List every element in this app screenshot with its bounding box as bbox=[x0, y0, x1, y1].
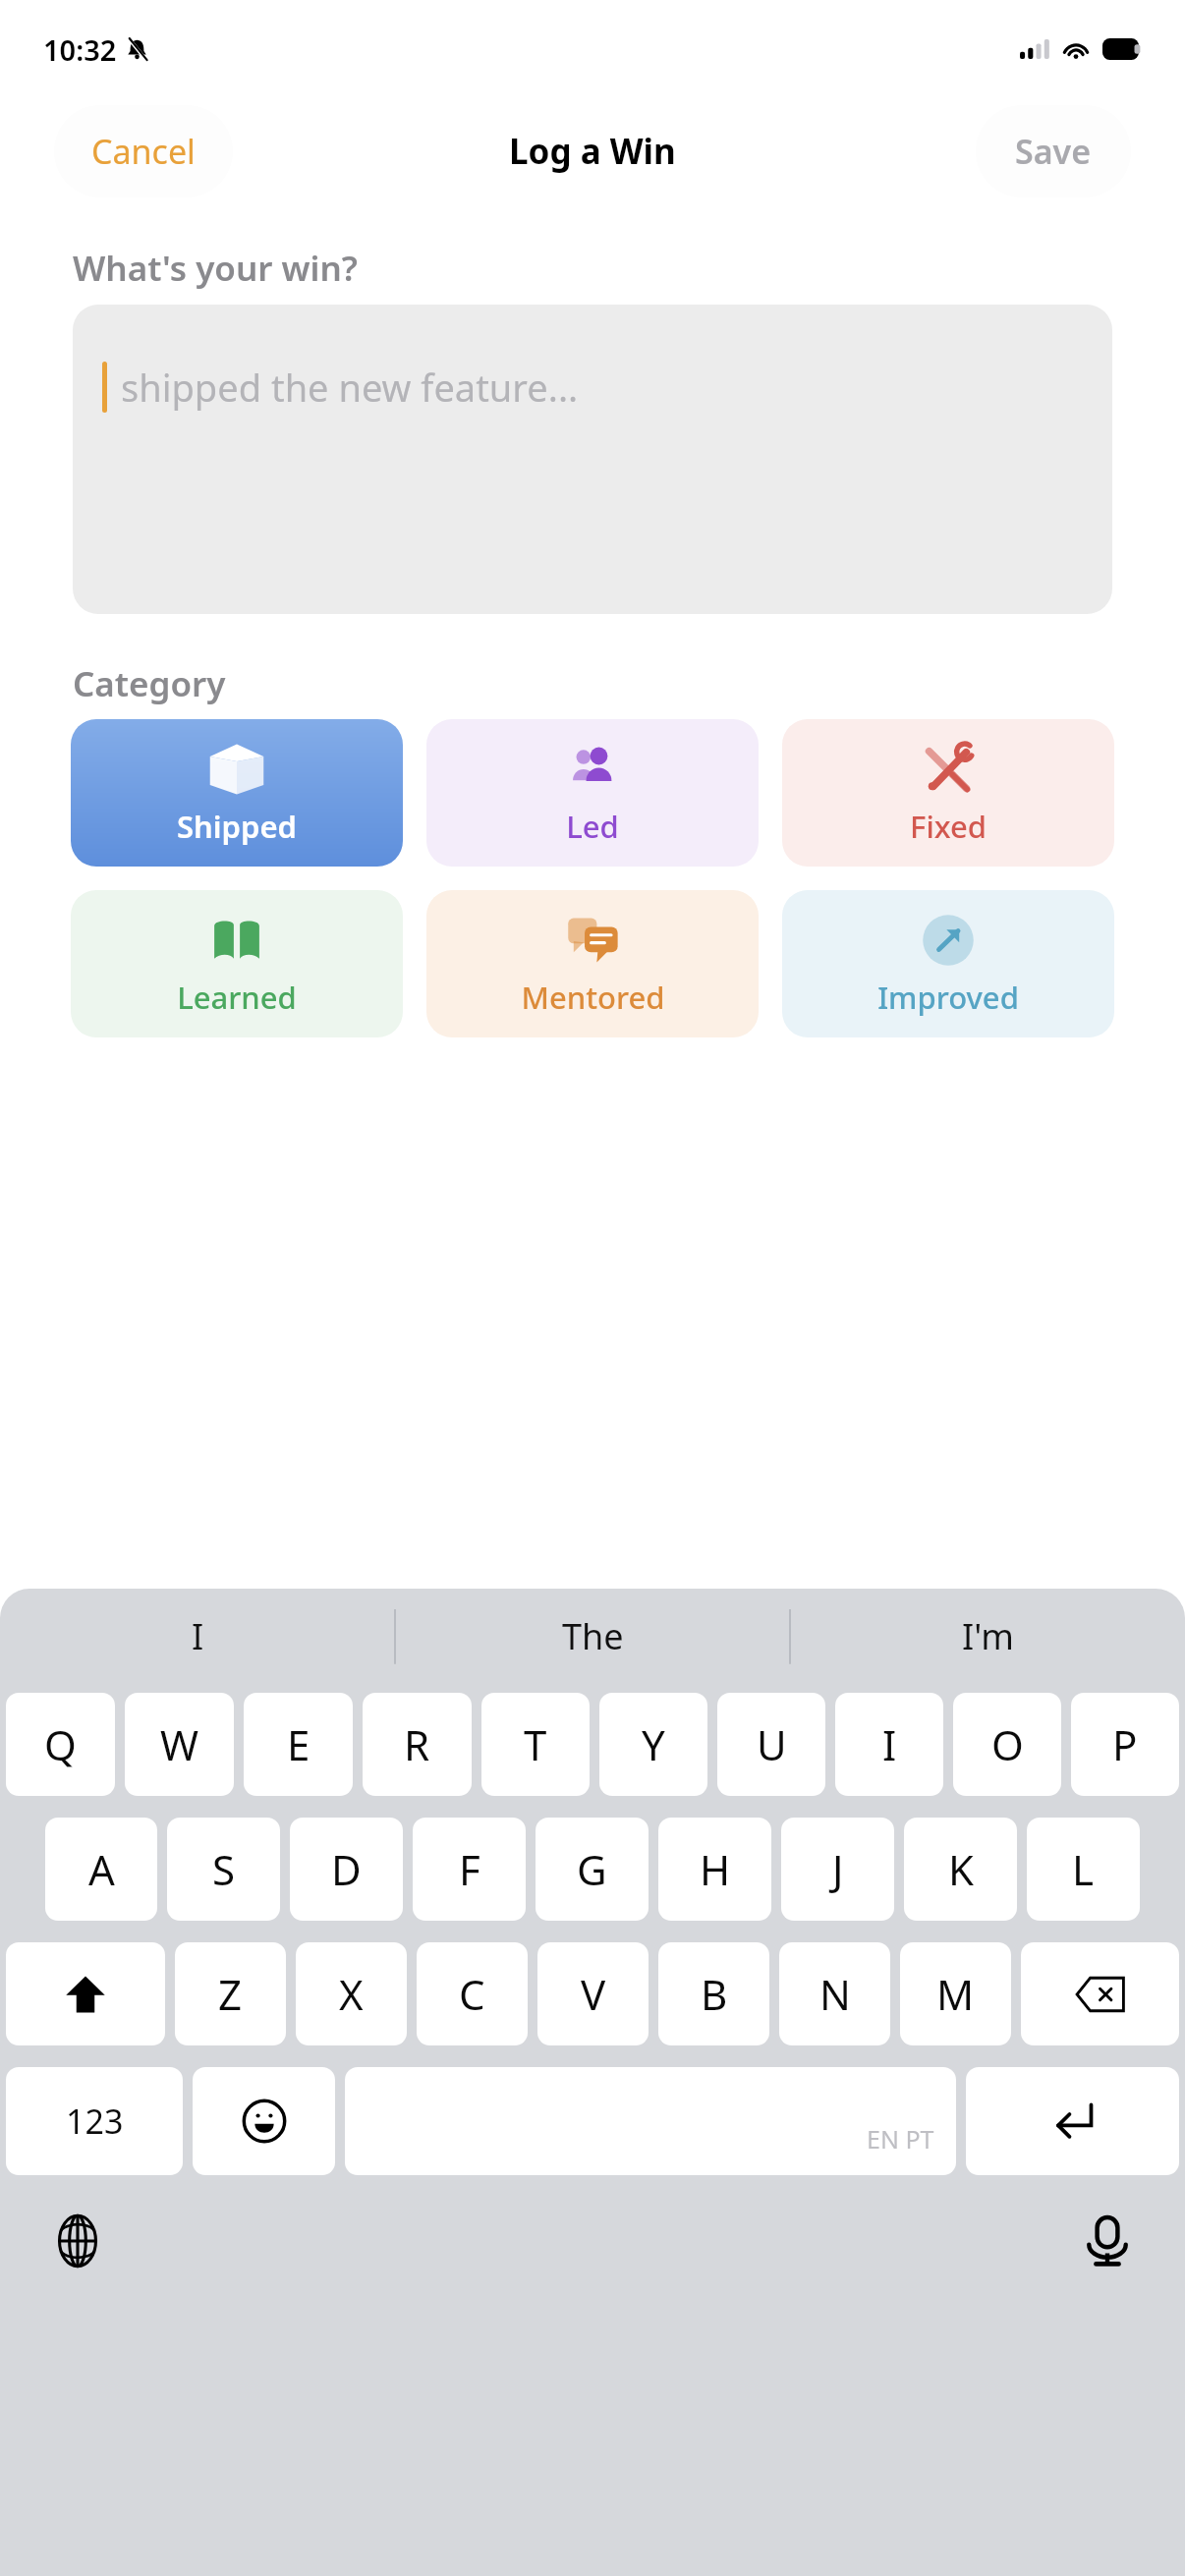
button[interactable]: EN PT bbox=[345, 2067, 956, 2175]
staticText: L bbox=[1072, 1841, 1095, 1897]
staticText: What's your win? bbox=[73, 245, 358, 292]
button[interactable]: R bbox=[363, 1693, 472, 1796]
staticText: I bbox=[192, 1612, 204, 1660]
button[interactable]: Z bbox=[175, 1942, 286, 2045]
button[interactable]: I bbox=[0, 1589, 395, 1683]
staticText: Y bbox=[642, 1716, 665, 1772]
button[interactable]: A bbox=[45, 1818, 157, 1921]
button[interactable]: F bbox=[413, 1818, 526, 1921]
staticText: EN PT bbox=[867, 2122, 934, 2156]
staticText: H bbox=[700, 1841, 731, 1897]
button[interactable]: I bbox=[835, 1693, 943, 1796]
button[interactable]: G bbox=[536, 1818, 649, 1921]
staticText: I bbox=[882, 1716, 897, 1772]
staticText: I'm bbox=[962, 1612, 1014, 1660]
staticText: E bbox=[287, 1716, 310, 1772]
button[interactable]: U bbox=[717, 1693, 825, 1796]
button[interactable]: Backspace bbox=[1021, 1942, 1179, 2045]
staticText: V bbox=[581, 1966, 606, 2022]
button[interactable]: Return bbox=[966, 2067, 1179, 2175]
staticText: G bbox=[577, 1841, 607, 1897]
staticText: Learned bbox=[177, 977, 297, 1018]
staticText: The bbox=[562, 1612, 624, 1660]
button[interactable]: B bbox=[658, 1942, 769, 2045]
staticText: Cancel bbox=[91, 129, 196, 174]
staticText: R bbox=[404, 1716, 430, 1772]
button[interactable]: Improved bbox=[782, 890, 1114, 1037]
button[interactable]: S bbox=[167, 1818, 280, 1921]
staticText: U bbox=[757, 1716, 787, 1772]
button[interactable]: H bbox=[658, 1818, 771, 1921]
button[interactable]: Q bbox=[6, 1693, 115, 1796]
staticText: Save bbox=[1015, 129, 1092, 174]
staticText: C bbox=[459, 1966, 485, 2022]
staticText: Fixed bbox=[910, 806, 987, 847]
staticText: 10:32 bbox=[43, 30, 117, 69]
button[interactable]: Learned bbox=[71, 890, 403, 1037]
staticText: Shipped bbox=[177, 806, 297, 847]
button[interactable]: M bbox=[900, 1942, 1011, 2045]
button[interactable]: C bbox=[417, 1942, 528, 2045]
button[interactable]: Mentored bbox=[426, 890, 759, 1037]
button[interactable]: I'm bbox=[790, 1589, 1185, 1683]
staticText: F bbox=[459, 1841, 480, 1897]
staticText: Q bbox=[44, 1716, 77, 1772]
staticText: J bbox=[832, 1841, 844, 1897]
button[interactable]: K bbox=[904, 1818, 1017, 1921]
button[interactable]: Change keyboard language bbox=[39, 2203, 116, 2279]
button[interactable]: Dictate bbox=[1069, 2203, 1146, 2279]
staticText: S bbox=[212, 1841, 236, 1897]
button[interactable]: X bbox=[296, 1942, 407, 2045]
button[interactable]: Fixed bbox=[782, 719, 1114, 867]
staticText: 123 bbox=[66, 2099, 124, 2144]
button[interactable]: E bbox=[244, 1693, 353, 1796]
staticText: D bbox=[331, 1841, 362, 1897]
staticText: X bbox=[339, 1966, 364, 2022]
button[interactable]: D bbox=[290, 1818, 403, 1921]
staticText: Category bbox=[73, 660, 226, 707]
staticText: K bbox=[948, 1841, 974, 1897]
staticText: W bbox=[160, 1716, 199, 1772]
staticText: N bbox=[819, 1966, 851, 2022]
staticText: Led bbox=[566, 806, 619, 847]
staticText: shipped the new feature... bbox=[121, 362, 579, 413]
button[interactable]: The bbox=[395, 1589, 790, 1683]
staticText: P bbox=[1112, 1716, 1138, 1772]
staticText: B bbox=[701, 1966, 728, 2022]
button[interactable]: J bbox=[781, 1818, 894, 1921]
button[interactable]: Emoji bbox=[193, 2067, 335, 2175]
button[interactable]: 123 bbox=[6, 2067, 183, 2175]
staticText: O bbox=[991, 1716, 1024, 1772]
staticText: Mentored bbox=[521, 977, 665, 1018]
staticText: Improved bbox=[877, 977, 1019, 1018]
button[interactable]: Save bbox=[976, 105, 1131, 197]
button[interactable]: V bbox=[537, 1942, 649, 2045]
staticText: A bbox=[88, 1841, 115, 1897]
staticText: T bbox=[524, 1716, 547, 1772]
button[interactable]: L bbox=[1027, 1818, 1140, 1921]
button[interactable]: O bbox=[953, 1693, 1061, 1796]
button[interactable]: Cancel bbox=[54, 105, 233, 197]
button[interactable]: Shift bbox=[6, 1942, 165, 2045]
staticText: Z bbox=[218, 1966, 243, 2022]
button[interactable]: N bbox=[779, 1942, 890, 2045]
staticText: Log a Win bbox=[509, 128, 676, 175]
button[interactable]: Shipped bbox=[71, 719, 403, 867]
button[interactable]: P bbox=[1071, 1693, 1179, 1796]
button[interactable]: shipped the new feature... bbox=[73, 305, 1112, 614]
button[interactable]: T bbox=[481, 1693, 590, 1796]
button[interactable]: Led bbox=[426, 719, 759, 867]
button[interactable]: W bbox=[125, 1693, 234, 1796]
button[interactable]: Y bbox=[599, 1693, 707, 1796]
staticText: M bbox=[936, 1966, 975, 2022]
